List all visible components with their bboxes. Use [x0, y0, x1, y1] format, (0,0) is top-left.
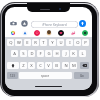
- staticText: Z: [22, 63, 25, 69]
- button[interactable]: Camera: [10, 20, 17, 27]
- staticText: S: [22, 51, 25, 57]
- button[interactable]: space: [19, 72, 72, 79]
- button[interactable]: Apps: [21, 20, 28, 27]
- staticText: K: [72, 51, 75, 57]
- staticText: M: [72, 63, 76, 69]
- button[interactable]: G: [45, 50, 52, 57]
- button[interactable]: Q: [7, 39, 14, 46]
- button[interactable]: Backspace: [80, 62, 89, 69]
- staticText: G: [47, 51, 51, 57]
- button[interactable]: H: [53, 50, 60, 57]
- button[interactable]: Z: [20, 62, 27, 69]
- button[interactable]: App shortcut: [46, 30, 52, 36]
- button[interactable]: C: [37, 62, 44, 69]
- button[interactable]: P: [82, 39, 89, 46]
- staticText: U: [59, 40, 63, 46]
- button[interactable]: M: [70, 62, 77, 69]
- button[interactable]: A: [11, 50, 18, 57]
- staticText: E: [26, 40, 29, 46]
- button[interactable]: U: [57, 39, 64, 46]
- button[interactable]: App shortcut: [70, 30, 76, 36]
- staticText: 123: [10, 74, 15, 78]
- staticText: A: [13, 51, 16, 57]
- button[interactable]: iPhone Keyboard: [31, 21, 78, 28]
- staticText: F: [39, 51, 42, 57]
- button[interactable]: App shortcut: [82, 30, 88, 36]
- staticText: C: [39, 63, 42, 69]
- button[interactable]: T: [40, 39, 47, 46]
- button[interactable]: V: [45, 62, 52, 69]
- button[interactable]: App shortcut: [58, 30, 64, 36]
- button[interactable]: F: [37, 50, 44, 57]
- staticText: P: [84, 40, 87, 46]
- button[interactable]: Send: [79, 20, 86, 27]
- staticText: X: [30, 63, 33, 69]
- button[interactable]: Y: [49, 39, 56, 46]
- button[interactable]: K: [70, 50, 77, 57]
- staticText: space: [41, 74, 50, 78]
- button[interactable]: D: [28, 50, 35, 57]
- button[interactable]: Shift: [7, 62, 19, 69]
- button[interactable]: App shortcut: [10, 30, 16, 36]
- staticText: R: [34, 40, 37, 46]
- button[interactable]: App shortcut: [34, 30, 40, 36]
- staticText: L: [81, 51, 84, 57]
- button[interactable]: X: [28, 62, 35, 69]
- button[interactable]: W: [15, 39, 22, 46]
- staticText: O: [76, 40, 80, 46]
- button[interactable]: Go: [74, 72, 89, 79]
- staticText: W: [17, 40, 21, 46]
- staticText: Y: [51, 40, 54, 46]
- staticText: D: [30, 51, 34, 57]
- button[interactable]: R: [32, 39, 39, 46]
- button[interactable]: J: [62, 50, 69, 57]
- staticText: V: [47, 63, 50, 69]
- staticText: H: [55, 51, 59, 57]
- staticText: iPhone Keyboard: [42, 23, 67, 27]
- button[interactable]: B: [53, 62, 60, 69]
- staticText: Go: [80, 74, 84, 78]
- button[interactable]: E: [24, 39, 31, 46]
- button[interactable]: N: [62, 62, 69, 69]
- button[interactable]: App shortcut: [22, 30, 28, 36]
- staticText: Q: [9, 40, 13, 46]
- staticText: T: [42, 40, 45, 46]
- staticText: N: [64, 63, 68, 69]
- button[interactable]: L: [79, 50, 86, 57]
- staticText: B: [55, 63, 58, 69]
- button[interactable]: S: [20, 50, 27, 57]
- button[interactable]: I: [66, 39, 73, 46]
- button[interactable]: O: [74, 39, 81, 46]
- staticText: J: [65, 51, 67, 57]
- button[interactable]: 123: [7, 72, 18, 79]
- staticText: I: [69, 40, 71, 46]
